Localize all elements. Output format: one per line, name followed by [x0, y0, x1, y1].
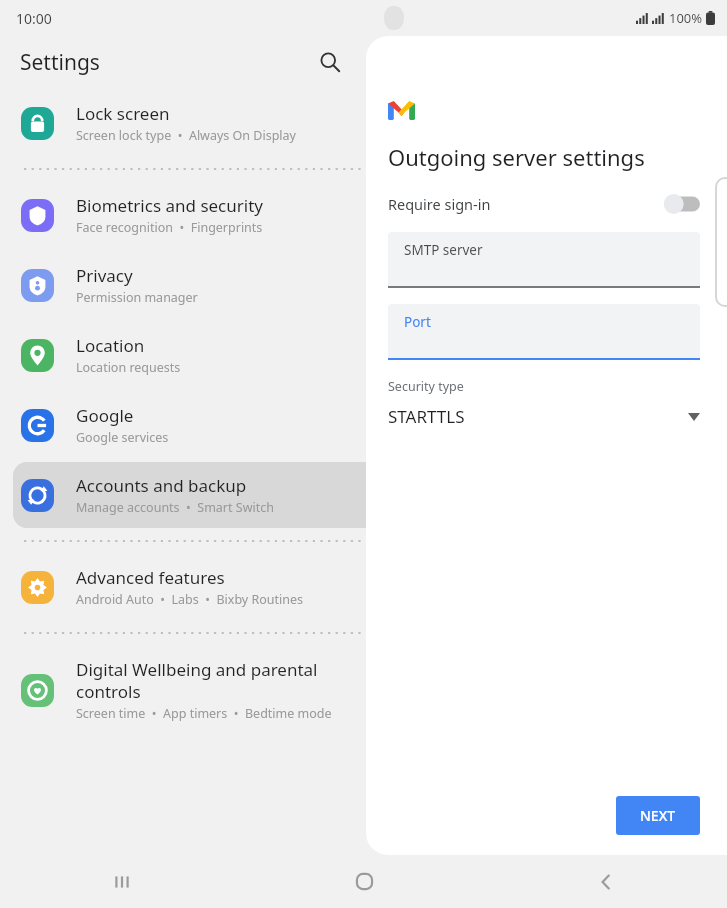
staticText: Screen time • App timers • Bedtime mode [76, 705, 332, 722]
button[interactable]: STARTTLS [388, 405, 700, 428]
button[interactable]: Recents [0, 855, 243, 908]
staticText: 10:00 [16, 9, 52, 28]
staticText: Android Auto • Labs • Bixby Routines [76, 591, 304, 608]
staticText: Advanced features [76, 566, 225, 589]
button[interactable]: Advanced features [13, 554, 714, 620]
staticText: Digital Wellbeing and parental controls [76, 658, 318, 703]
staticText: Privacy [76, 264, 133, 287]
staticText: Face recognition • Fingerprints [76, 219, 263, 236]
staticText: Security type [388, 378, 464, 395]
button[interactable]: Location [13, 322, 714, 388]
staticText: NEXT [640, 806, 676, 825]
staticText: Location requests [76, 359, 181, 376]
button[interactable]: Lock screen [13, 90, 714, 156]
staticText: 100% [669, 9, 703, 27]
staticText: Require sign-in [388, 194, 491, 214]
button[interactable]: NEXT [616, 796, 700, 835]
button[interactable]: Google [13, 392, 714, 458]
button[interactable]: Back [485, 855, 727, 908]
button[interactable]: Search [310, 42, 350, 82]
button[interactable]: Accounts and backup [13, 462, 714, 528]
staticText: Screen lock type • Always On Display [76, 127, 296, 144]
button[interactable]: Privacy [13, 252, 714, 318]
staticText: Permission manager [76, 289, 198, 306]
staticText: Biometrics and security [76, 194, 263, 217]
staticText: Settings [20, 48, 100, 77]
button[interactable]: Port [388, 304, 700, 358]
staticText: Google [76, 404, 134, 427]
staticText: SMTP server [404, 241, 483, 259]
button[interactable]: SMTP server [388, 232, 700, 286]
button[interactable]: Home [243, 855, 485, 908]
staticText: STARTTLS [388, 405, 465, 428]
staticText: Location [76, 334, 145, 357]
staticText: Google services [76, 429, 169, 446]
button[interactable]: Require sign-in [388, 194, 700, 214]
button[interactable]: Digital Wellbeing and parental controls [13, 646, 714, 734]
staticText: Accounts and backup [76, 474, 247, 497]
button[interactable]: Biometrics and security [13, 182, 714, 248]
staticText: Manage accounts • Smart Switch [76, 499, 274, 516]
staticText: Lock screen [76, 102, 170, 125]
staticText: Outgoing server settings [388, 142, 645, 172]
staticText: Port [404, 313, 431, 331]
